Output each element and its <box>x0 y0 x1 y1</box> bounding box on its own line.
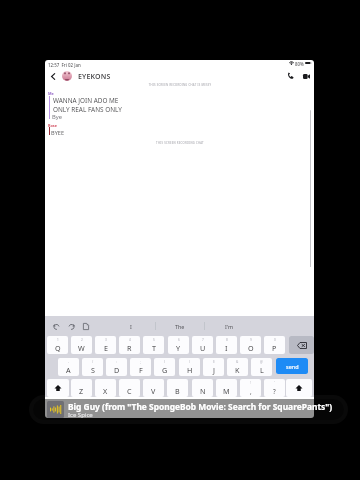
button[interactable]: 6 <box>168 336 189 354</box>
staticText: A <box>66 365 71 375</box>
button[interactable]: 8 <box>216 336 237 354</box>
button[interactable]: V <box>143 379 164 397</box>
staticText: / <box>92 360 94 364</box>
button[interactable]: ' <box>264 379 285 397</box>
staticText: V <box>151 386 156 396</box>
staticText: H <box>187 365 193 375</box>
button[interactable]: 3 <box>95 336 116 354</box>
staticText: J <box>213 365 215 375</box>
staticText: 4 <box>129 338 131 342</box>
staticText: F <box>139 365 143 375</box>
staticText: 8 <box>226 338 228 342</box>
staticText: Ice Spice <box>68 411 93 419</box>
staticText: ONLY REAL FANS ONLY <box>53 105 122 114</box>
button[interactable]: B <box>167 379 188 397</box>
button[interactable]: / <box>82 358 103 376</box>
staticText: Z <box>79 386 84 396</box>
staticText: M <box>223 386 230 396</box>
button[interactable]: ( <box>154 358 175 376</box>
button[interactable]: Video call <box>299 69 313 83</box>
button[interactable]: Shift <box>286 379 312 397</box>
staticText: G <box>162 365 168 375</box>
staticText: EYEKONS <box>78 72 111 82</box>
staticText: ' <box>274 381 275 385</box>
button[interactable]: C <box>119 379 140 397</box>
button[interactable]: ! <box>240 379 261 397</box>
staticText: 7 <box>202 338 204 342</box>
staticText: ! <box>250 381 251 385</box>
staticText: 3 <box>105 338 107 342</box>
staticText: C <box>127 386 132 396</box>
staticText: ) <box>189 360 190 364</box>
staticText: The <box>175 323 185 330</box>
staticText: Y <box>176 343 181 353</box>
button[interactable]: Shift <box>47 379 69 397</box>
staticText: O <box>248 343 254 353</box>
staticText: THIS SCREEN RECORDING CHAT IS MESSY <box>105 83 255 87</box>
staticText: I'm <box>225 323 233 330</box>
button[interactable]: 9 <box>240 336 261 354</box>
button[interactable]: @ <box>251 358 272 376</box>
button[interactable]: Big Guy (from "The SpongeBob Movie: Sear… <box>33 399 344 420</box>
staticText: $ <box>213 360 215 364</box>
staticText: 6 <box>178 338 180 342</box>
staticText: E <box>104 343 108 353</box>
staticText: ; <box>140 360 141 364</box>
button[interactable]: N <box>192 379 213 397</box>
button[interactable]: Undo <box>51 321 61 331</box>
staticText: R <box>127 343 132 353</box>
button[interactable]: Back <box>47 70 59 82</box>
button[interactable]: ) <box>179 358 200 376</box>
staticText: X <box>103 386 108 396</box>
staticText: - <box>68 360 69 364</box>
button[interactable]: 2 <box>71 336 92 354</box>
staticText: : <box>116 360 117 364</box>
staticText: I <box>225 343 228 353</box>
staticText: D <box>114 365 120 375</box>
staticText: U <box>200 343 206 353</box>
button[interactable]: 0 <box>264 336 285 354</box>
button[interactable]: 5 <box>143 336 164 354</box>
staticText: 5 <box>153 338 155 342</box>
staticText: I <box>130 323 132 330</box>
staticText: B <box>175 386 180 396</box>
button[interactable]: $ <box>203 358 224 376</box>
staticText: T <box>152 343 156 353</box>
button[interactable]: send <box>276 358 308 374</box>
staticText: send <box>286 363 299 370</box>
staticText: @ <box>260 360 263 364</box>
staticText: 2 <box>81 338 83 342</box>
staticText: 1 <box>57 338 59 342</box>
staticText: W <box>78 343 85 353</box>
staticText: ( <box>164 360 165 364</box>
button[interactable]: Z <box>71 379 92 397</box>
staticText: ? <box>273 387 276 395</box>
button[interactable]: ; <box>130 358 151 376</box>
staticText: 80% <box>295 61 304 67</box>
button[interactable]: I <box>106 316 155 336</box>
button[interactable]: M <box>216 379 237 397</box>
button[interactable]: 1 <box>47 336 68 354</box>
button[interactable]: I'm <box>204 316 253 336</box>
staticText: , <box>250 387 252 395</box>
staticText: S <box>91 365 95 375</box>
staticText: K <box>235 365 240 375</box>
button[interactable]: - <box>58 358 79 376</box>
staticText: Bye <box>52 113 62 121</box>
staticText: L <box>260 365 264 375</box>
staticText: Q <box>55 343 61 353</box>
button[interactable]: The <box>155 316 204 336</box>
staticText: 0 <box>274 338 276 342</box>
button[interactable]: & <box>227 358 248 376</box>
button[interactable]: Redo <box>66 321 76 331</box>
button[interactable]: 4 <box>119 336 140 354</box>
button[interactable]: Backspace <box>289 336 314 354</box>
staticText: THIS SCREEN RECORDING CHAT <box>105 141 255 145</box>
button[interactable]: Call <box>283 68 297 82</box>
button[interactable]: 7 <box>192 336 213 354</box>
staticText: Big Guy (from "The SpongeBob Movie: Sear… <box>68 401 333 412</box>
button[interactable]: Paste <box>81 321 91 331</box>
button[interactable]: : <box>106 358 127 376</box>
staticText: BYEE <box>51 129 65 137</box>
button[interactable]: X <box>95 379 116 397</box>
